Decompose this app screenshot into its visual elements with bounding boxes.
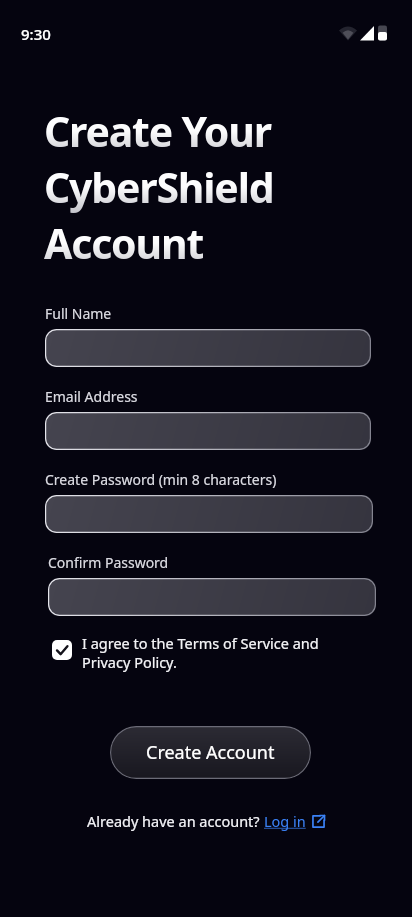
staticText: CyberShield <box>44 159 274 215</box>
button[interactable]: Create Account <box>110 726 311 779</box>
button[interactable]: Confirm Password <box>48 578 376 616</box>
button[interactable]: Log in <box>264 811 326 831</box>
staticText: 9:30 <box>21 24 51 44</box>
button[interactable]: I agree to the Terms of Service and Priv… <box>52 633 367 672</box>
staticText: Create Password (min 8 characters) <box>45 470 277 489</box>
staticText: Already have an account? <box>87 811 264 831</box>
staticText: Email Address <box>45 387 138 406</box>
staticText: Confirm Password <box>48 553 169 572</box>
staticText: Create Account <box>146 740 275 765</box>
staticText: Full Name <box>45 304 112 323</box>
staticText: Account <box>44 215 204 271</box>
staticText: Log in <box>264 811 306 831</box>
button[interactable]: Create Password (min 8 characters) <box>45 495 373 533</box>
button[interactable]: Email Address <box>45 412 371 450</box>
staticText: I agree to the Terms of Service and Priv… <box>82 633 367 672</box>
button[interactable]: Full Name <box>45 329 371 367</box>
staticText: Create Your <box>44 103 271 159</box>
